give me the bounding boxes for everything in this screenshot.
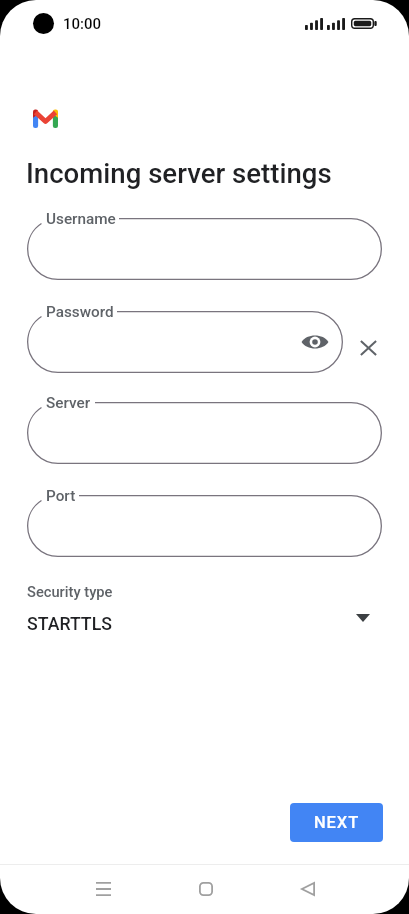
button[interactable]: NEXT bbox=[290, 803, 383, 842]
staticText: NEXT bbox=[314, 813, 360, 832]
button[interactable]: Recents bbox=[83, 869, 123, 909]
button[interactable]: Username bbox=[27, 218, 382, 280]
button[interactable]: Server bbox=[27, 402, 382, 464]
button[interactable]: Back bbox=[288, 869, 328, 909]
button[interactable]: Home bbox=[186, 869, 226, 909]
staticText: Server bbox=[46, 394, 91, 412]
button[interactable]: Show password bbox=[298, 325, 332, 359]
staticText: Port bbox=[46, 487, 76, 505]
button[interactable]: Security type bbox=[0, 578, 409, 642]
button[interactable]: Port bbox=[27, 495, 382, 557]
staticText: Password bbox=[46, 303, 114, 321]
staticText: Username bbox=[46, 210, 116, 228]
button[interactable]: Password bbox=[27, 311, 343, 373]
button[interactable]: Clear bbox=[349, 329, 387, 367]
staticText: STARTTLS bbox=[27, 614, 112, 635]
staticText: Incoming server settings bbox=[26, 157, 332, 189]
staticText: 10:00 bbox=[63, 15, 102, 33]
staticText: Security type bbox=[27, 583, 113, 600]
